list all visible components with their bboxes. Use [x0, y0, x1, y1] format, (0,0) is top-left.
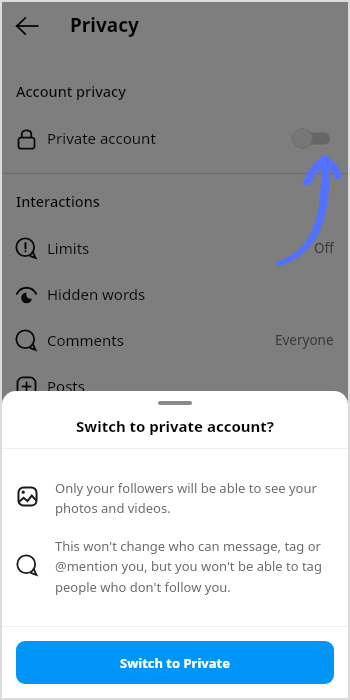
staticText: Only your followers will be able to see … — [55, 479, 327, 517]
staticText: This won't change who can message, tag o… — [55, 537, 327, 596]
staticText: Private account — [47, 128, 156, 148]
button[interactable]: Private account toggle — [292, 127, 330, 150]
button[interactable]: Posts — [2, 368, 348, 404]
staticText: Switch to Private — [120, 654, 230, 672]
button[interactable]: Private account — [2, 120, 348, 156]
staticText: Privacy — [70, 12, 139, 38]
staticText: Everyone — [275, 331, 334, 349]
staticText: Interactions — [16, 191, 100, 211]
staticText: Off — [314, 239, 334, 257]
button[interactable]: Switch to Private — [16, 641, 334, 684]
button[interactable]: Limits — [2, 230, 348, 266]
staticText: Comments — [47, 330, 124, 350]
staticText: Posts — [47, 376, 85, 396]
staticText: Switch to private account? — [76, 416, 274, 436]
button[interactable]: Hidden words — [2, 276, 348, 312]
button[interactable]: Comments — [2, 322, 348, 358]
button[interactable]: Back — [10, 9, 44, 43]
staticText: Account privacy — [16, 81, 126, 101]
staticText: Limits — [47, 238, 90, 258]
staticText: Hidden words — [47, 284, 146, 304]
